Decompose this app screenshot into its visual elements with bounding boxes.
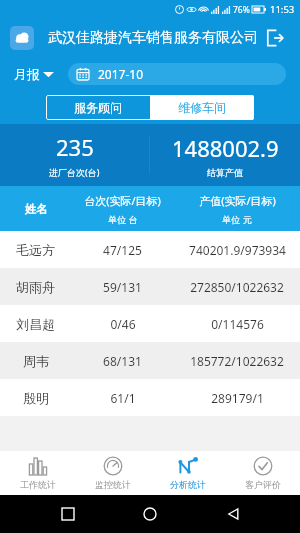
staticText: 76% (233, 4, 250, 16)
staticText: 235 (56, 132, 94, 162)
staticText: 740201.9/973934 (189, 242, 286, 258)
staticText: 59/131 (103, 279, 142, 295)
button[interactable]: 2017-10 (68, 63, 286, 85)
button[interactable]: 殷明 (0, 379, 300, 416)
staticText: 监控统计 (95, 479, 131, 490)
button[interactable]: 客户评价 (225, 451, 300, 495)
button[interactable]: 分析统计 (150, 451, 225, 495)
staticText: 289179/1 (211, 390, 264, 406)
staticText: 单位 台 (108, 213, 138, 225)
button[interactable]: 监控统计 (75, 451, 150, 495)
staticText: 刘昌超 (16, 316, 55, 332)
staticText: 周韦 (23, 353, 49, 369)
staticText: 11:53 (270, 3, 295, 16)
staticText: 结算产值 (207, 167, 243, 178)
button[interactable]: 周韦 (0, 342, 300, 379)
staticText: 维修车间 (178, 100, 226, 115)
staticText: 单位 元 (222, 213, 252, 225)
staticText: 服务顾问 (74, 100, 122, 115)
staticText: 68/131 (103, 353, 142, 369)
staticText: 进厂台次(台) (49, 166, 100, 178)
staticText: 分析统计 (170, 479, 206, 490)
staticText: 工作统计 (20, 479, 56, 490)
button[interactable]: Back (218, 499, 248, 529)
staticText: 胡雨舟 (16, 279, 55, 295)
staticText: 0/46 (110, 316, 136, 332)
staticText: 毛远方 (16, 242, 55, 258)
staticText: 1488002.9 (172, 133, 279, 163)
staticText: 客户评价 (245, 479, 281, 490)
button[interactable]: Home (135, 499, 165, 529)
staticText: 月报 (14, 66, 40, 82)
button[interactable]: 服务顾问 (46, 95, 150, 120)
staticText: 61/1 (110, 390, 136, 406)
staticText: 2017-10 (98, 66, 144, 82)
button[interactable]: 工作统计 (0, 451, 75, 495)
staticText: 武汉佳路捷汽车销售服务有限公司 (48, 29, 260, 47)
button[interactable]: Logout (260, 23, 290, 53)
staticText: 185772/1022632 (190, 353, 284, 369)
staticText: 272850/1022632 (190, 279, 284, 295)
button[interactable]: 胡雨舟 (0, 268, 300, 305)
staticText: 0/114576 (211, 316, 264, 332)
staticText: 姓名 (25, 202, 47, 216)
button[interactable]: 维修车间 (150, 95, 254, 120)
button[interactable]: Recents (53, 499, 83, 529)
staticText: 殷明 (23, 390, 49, 406)
staticText: 台次(实际/目标) (84, 193, 161, 208)
staticText: 产值(实际/目标) (199, 193, 276, 208)
button[interactable]: 刘昌超 (0, 305, 300, 342)
button[interactable]: 毛远方 (0, 231, 300, 268)
button[interactable]: 月报 (14, 63, 54, 85)
staticText: 47/125 (103, 242, 142, 258)
